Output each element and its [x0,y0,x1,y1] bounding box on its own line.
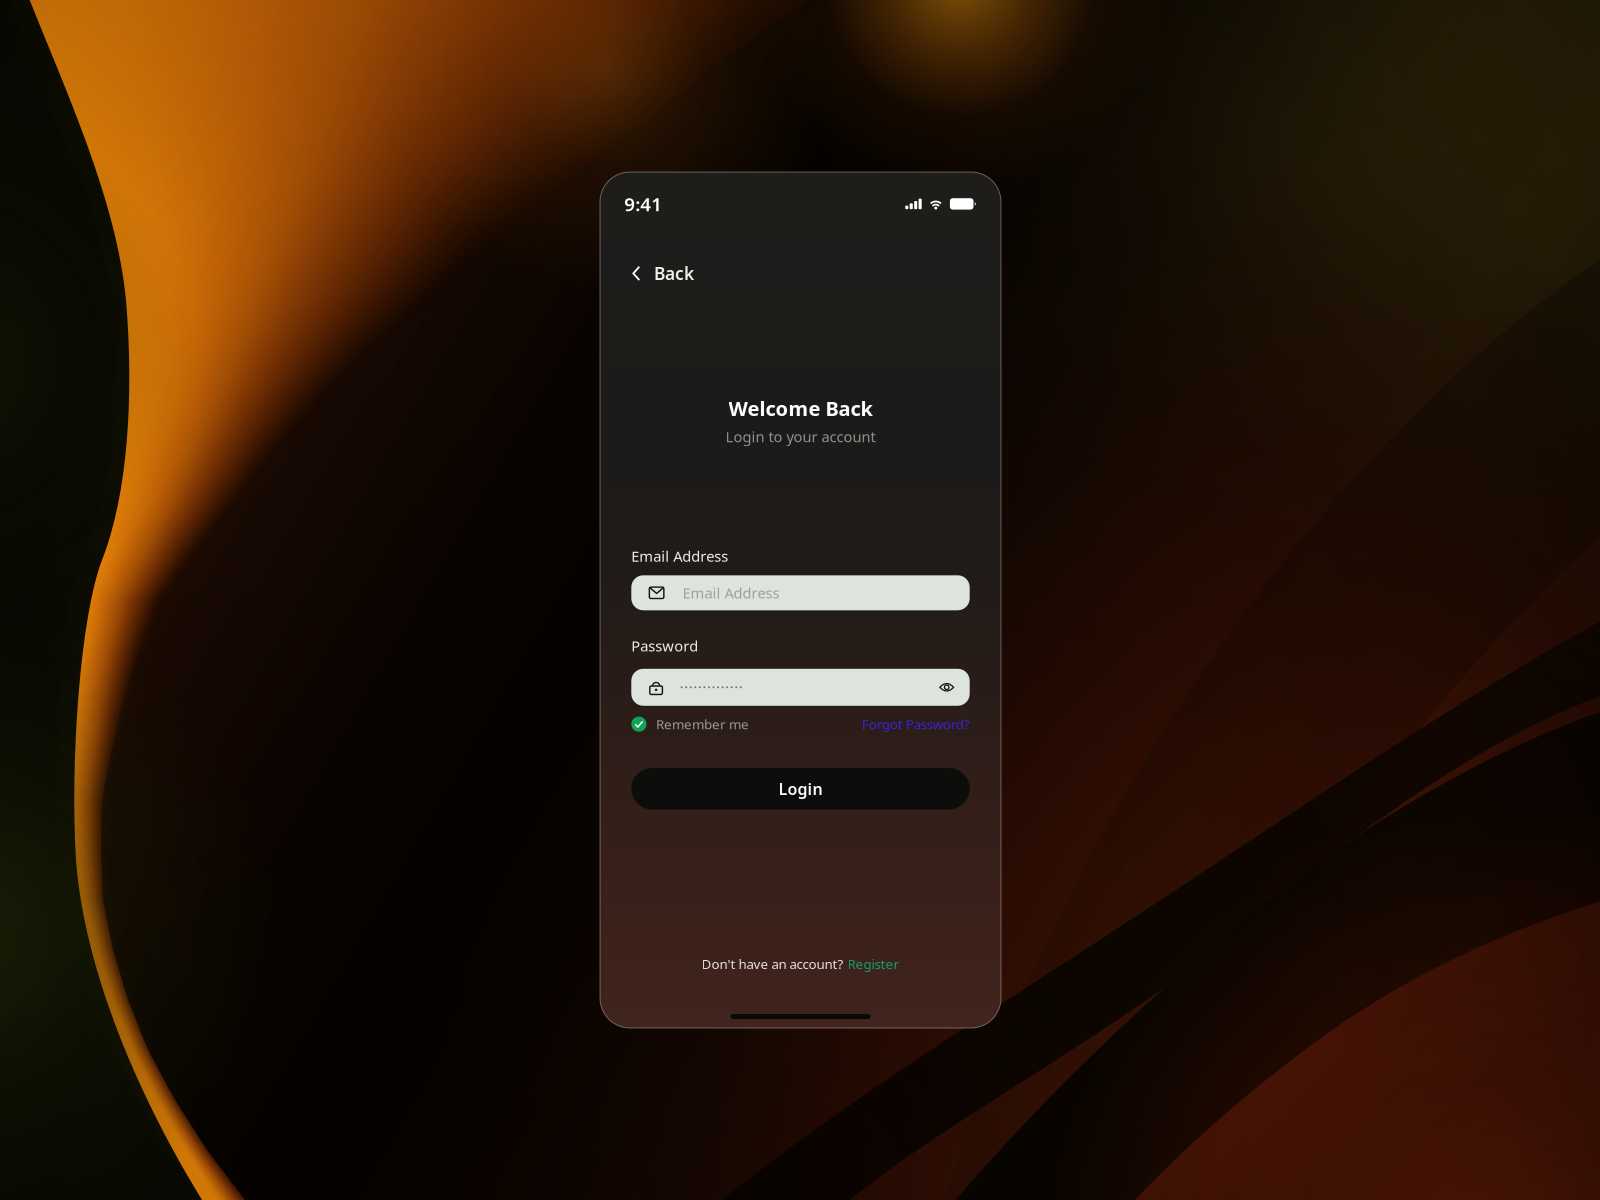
staticText: Login to your account [725,427,875,446]
staticText: Email Address [683,583,780,603]
staticText: Don't have an account? [701,955,843,973]
button[interactable]: Login [631,768,970,809]
button[interactable]: Back [600,262,710,284]
button[interactable]: Forgot Password? [862,716,970,733]
staticText: Password [631,636,698,656]
staticText: Remember me [656,715,749,733]
staticText: 9:41 [624,191,662,216]
button[interactable]: Remember me [631,716,749,733]
staticText: Login [778,778,822,799]
button[interactable]: Show password [937,677,957,697]
staticText: Back [654,262,694,285]
staticText: Email Address [631,546,728,566]
staticText: Register [847,955,899,973]
staticText: Welcome Back [728,395,872,421]
button[interactable]: Register [847,955,899,973]
staticText: Forgot Password? [862,715,970,733]
